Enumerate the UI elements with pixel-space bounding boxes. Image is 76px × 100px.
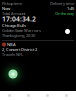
staticText: 1:45 — [67, 6, 74, 11]
staticText: 2, Convert District 2 — [2, 47, 37, 52]
staticText: Now — [2, 6, 10, 11]
staticText: NBA — [7, 42, 16, 47]
staticText: Chicago Bulls — [2, 23, 26, 28]
staticText: Total Amount — [2, 11, 25, 16]
button[interactable]: Call driver — [65, 29, 70, 34]
staticText: Delivery time — [50, 1, 74, 6]
staticText: Golden State Warriors — [2, 28, 41, 33]
staticText: Pickup time — [2, 1, 22, 6]
button[interactable]: Tab — [57, 91, 76, 100]
staticText: Travels NFL — [2, 52, 23, 57]
staticText: Thanksgiving, 20:30 — [2, 33, 35, 38]
button[interactable]: Tab — [19, 91, 38, 100]
button[interactable]: Tab — [38, 91, 57, 100]
button[interactable]: Recenter map — [3, 64, 23, 84]
staticText: 17:04:34.2 — [2, 15, 36, 23]
button[interactable]: Tab — [0, 91, 19, 100]
staticText: On the way — [55, 11, 74, 16]
